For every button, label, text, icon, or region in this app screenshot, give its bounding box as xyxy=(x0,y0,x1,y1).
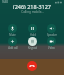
button[interactable]: End call xyxy=(27,61,37,71)
staticText: Keypad xyxy=(28,46,37,50)
staticText: Speaker xyxy=(47,33,57,37)
staticText: Mute xyxy=(9,33,16,37)
button[interactable]: Video xyxy=(45,37,58,50)
staticText: Video xyxy=(48,46,55,50)
staticText: Calling mobile… xyxy=(21,10,44,14)
button[interactable]: Add call xyxy=(6,37,19,50)
staticText: 9:30 xyxy=(2,0,8,4)
staticText: (246) 218-3127 xyxy=(13,3,51,9)
button[interactable]: Hold xyxy=(26,24,39,37)
staticText: Add call xyxy=(8,46,18,50)
staticText: Hold xyxy=(30,33,36,37)
button[interactable]: Mute xyxy=(6,24,19,37)
button[interactable]: Keypad xyxy=(26,37,39,50)
button[interactable]: Speaker xyxy=(45,24,58,37)
